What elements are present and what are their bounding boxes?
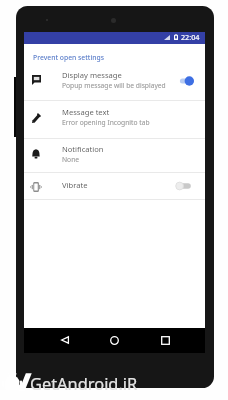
staticText: Message text [62, 107, 110, 117]
staticText: Vibrate [62, 180, 88, 190]
button[interactable]: Message text [24, 100, 205, 138]
button[interactable]: Toggle on [175, 74, 195, 88]
staticText: None [62, 155, 80, 164]
staticText: Popup message will be displayed [62, 81, 166, 90]
staticText: Error opening Incognito tab [62, 118, 150, 127]
staticText: Notification [62, 144, 104, 154]
button[interactable]: Recent apps [155, 330, 175, 350]
staticText: GetAndroid.iR [30, 372, 138, 394]
button[interactable]: Vibrate [24, 172, 205, 199]
button[interactable]: Toggle off [175, 179, 195, 193]
staticText: Display message [62, 70, 122, 80]
button[interactable]: Display message [24, 63, 205, 100]
button[interactable]: Notification [24, 138, 205, 173]
staticText: 22:04 [181, 32, 200, 42]
button[interactable]: Back [55, 330, 75, 350]
staticText: Prevent open settings [33, 53, 105, 62]
button[interactable]: Home [104, 330, 124, 350]
